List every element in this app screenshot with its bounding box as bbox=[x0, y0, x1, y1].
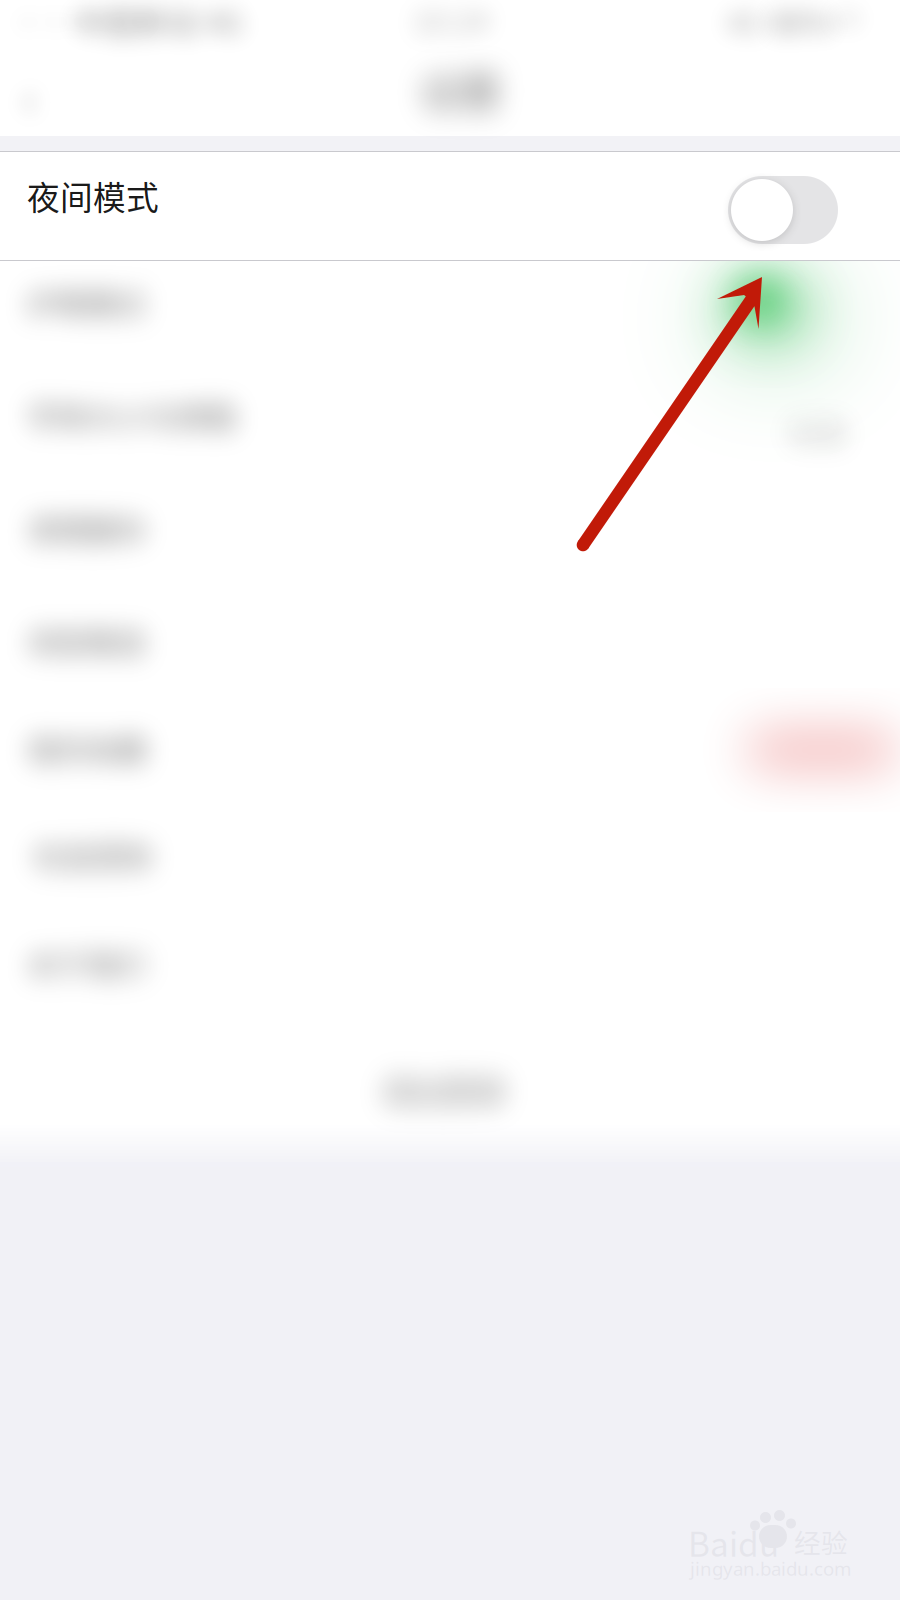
staticText: jingyan.baidu.com bbox=[690, 1556, 851, 1581]
button[interactable]: 夜间模式 bbox=[0, 152, 900, 260]
staticText: Baidu bbox=[688, 1518, 779, 1566]
staticText: 夜间模式 bbox=[27, 172, 159, 219]
staticText: 经验 bbox=[794, 1522, 848, 1561]
